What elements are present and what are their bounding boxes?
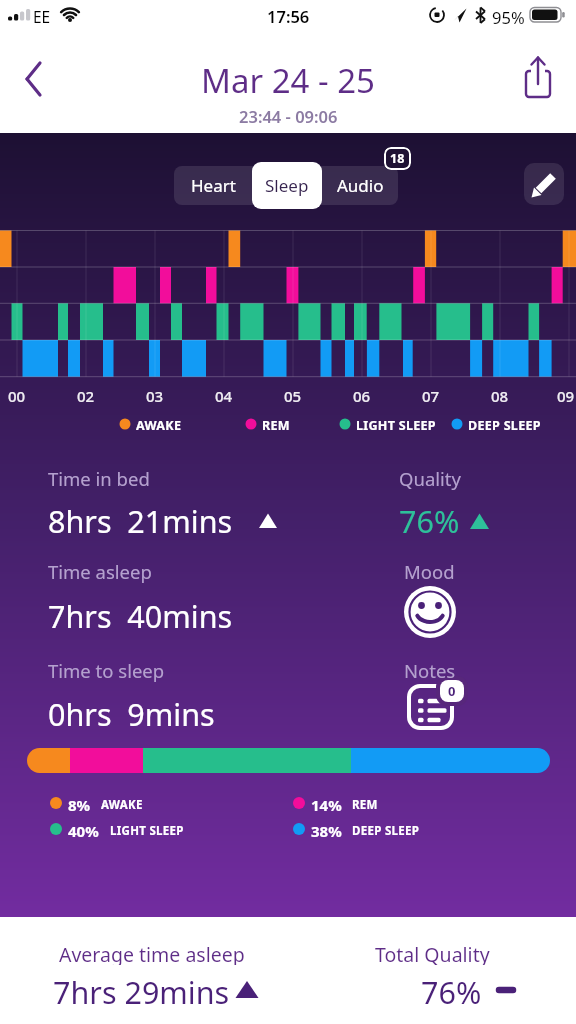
staticText: Sleep xyxy=(265,174,309,197)
staticText: 06 xyxy=(353,386,371,406)
staticText: LIGHT SLEEP xyxy=(356,417,436,434)
staticText: 8% xyxy=(68,795,91,815)
staticText: Heart xyxy=(191,174,236,197)
staticText: Total Quality xyxy=(375,941,490,965)
staticText: Average time asleep xyxy=(59,941,245,965)
staticText: 17:56 xyxy=(267,5,310,27)
staticText: 76% xyxy=(399,500,460,542)
staticText: 08 xyxy=(491,386,509,406)
staticText: Notes xyxy=(404,658,456,683)
staticText: 8hrs 21mins xyxy=(48,500,233,542)
staticText: 18 xyxy=(390,150,405,167)
button[interactable]: Sleep xyxy=(252,162,322,209)
button[interactable] xyxy=(524,163,564,205)
staticText: EE xyxy=(33,6,51,27)
staticText: 14% xyxy=(311,795,342,815)
staticText: 0 xyxy=(448,682,456,700)
staticText: LIGHT SLEEP xyxy=(110,823,184,839)
staticText: 23:44 - 09:06 xyxy=(239,105,338,127)
staticText: 09 xyxy=(557,386,575,406)
staticText: 38% xyxy=(311,821,342,841)
staticText: DEEP SLEEP xyxy=(468,417,541,434)
staticText: AWAKE xyxy=(136,417,182,434)
staticText: REM xyxy=(352,797,378,813)
staticText: REM xyxy=(262,417,290,434)
button[interactable]: Audio xyxy=(322,166,398,205)
staticText: Audio xyxy=(337,174,384,197)
staticText: 0hrs 9mins xyxy=(48,693,215,735)
staticText: 76% xyxy=(421,971,482,1013)
staticText: Quality xyxy=(399,466,461,491)
staticText: 04 xyxy=(215,386,233,406)
staticText: 07 xyxy=(422,386,440,406)
staticText: 00 xyxy=(8,386,26,406)
button[interactable] xyxy=(400,582,460,642)
button[interactable] xyxy=(14,54,56,104)
button[interactable] xyxy=(515,50,561,104)
staticText: Time asleep xyxy=(48,559,152,584)
staticText: 40% xyxy=(68,821,99,841)
staticText: Time in bed xyxy=(48,466,150,491)
button[interactable]: Heart xyxy=(174,166,252,205)
staticText: 95% xyxy=(492,6,525,28)
staticText: 02 xyxy=(77,386,95,406)
staticText: 7hrs 29mins xyxy=(53,971,230,1007)
staticText: 05 xyxy=(284,386,302,406)
staticText: 03 xyxy=(146,386,164,406)
staticText: AWAKE xyxy=(101,797,143,813)
staticText: DEEP SLEEP xyxy=(352,823,420,839)
staticText: Mood xyxy=(404,559,455,584)
staticText: Mar 24 - 25 xyxy=(201,58,375,103)
staticText: 7hrs 40mins xyxy=(48,595,233,637)
staticText: Time to sleep xyxy=(48,658,165,683)
button[interactable] xyxy=(404,677,468,739)
